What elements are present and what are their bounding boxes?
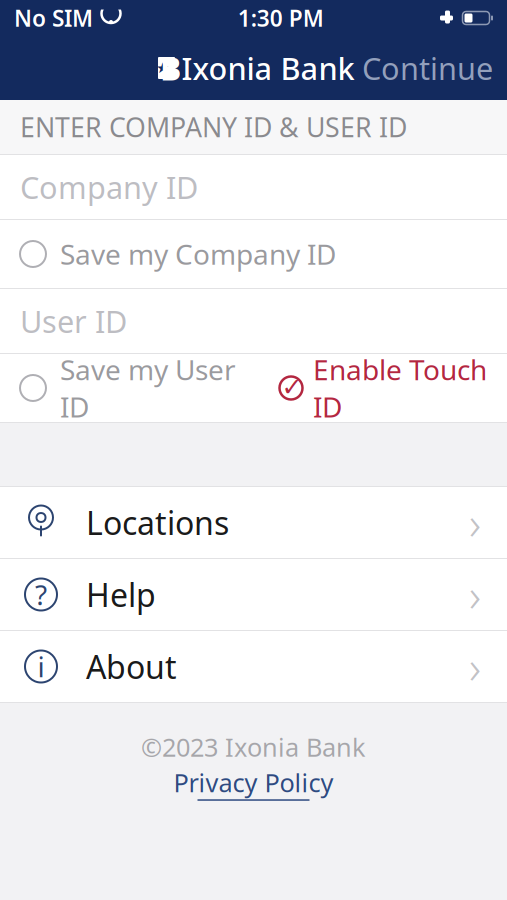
staticText: B bbox=[160, 47, 181, 89]
staticText: No SIM bbox=[14, 3, 93, 33]
staticText: ★ bbox=[156, 60, 169, 76]
button[interactable]: Save my Company ID bbox=[0, 220, 507, 288]
staticText: i bbox=[37, 648, 44, 685]
staticText: User ID bbox=[20, 301, 127, 341]
button[interactable]: Save my User ID bbox=[0, 354, 507, 422]
staticText: ? bbox=[35, 576, 47, 613]
staticText: Company ID bbox=[20, 167, 198, 207]
staticText: Save my User ID bbox=[60, 351, 236, 425]
staticText: Ixonia Bank bbox=[181, 48, 354, 88]
button[interactable]: ✓ bbox=[278, 351, 487, 425]
staticText: Locations bbox=[86, 501, 229, 544]
button[interactable]: ? bbox=[0, 559, 507, 630]
button[interactable]: i bbox=[0, 631, 507, 702]
button[interactable]: Continue bbox=[348, 38, 507, 98]
staticText: Enable Touch ID bbox=[313, 351, 487, 425]
staticText: ENTER COMPANY ID & USER ID bbox=[20, 109, 407, 145]
staticText: Privacy Policy bbox=[173, 766, 333, 799]
button[interactable]: Privacy Policy bbox=[173, 766, 333, 801]
staticText: About bbox=[86, 645, 177, 688]
staticText: › bbox=[469, 492, 481, 553]
staticText: Help bbox=[86, 573, 156, 616]
staticText: › bbox=[469, 636, 481, 697]
button[interactable]: Locations bbox=[0, 487, 507, 558]
staticText: ✓ bbox=[281, 373, 302, 401]
staticText: Save my Company ID bbox=[60, 235, 336, 273]
staticText: ©2023 Ixonia Bank bbox=[141, 730, 366, 764]
staticText: › bbox=[469, 564, 481, 625]
staticText: Continue bbox=[362, 48, 493, 88]
staticText: 1:30 PM bbox=[238, 3, 324, 33]
